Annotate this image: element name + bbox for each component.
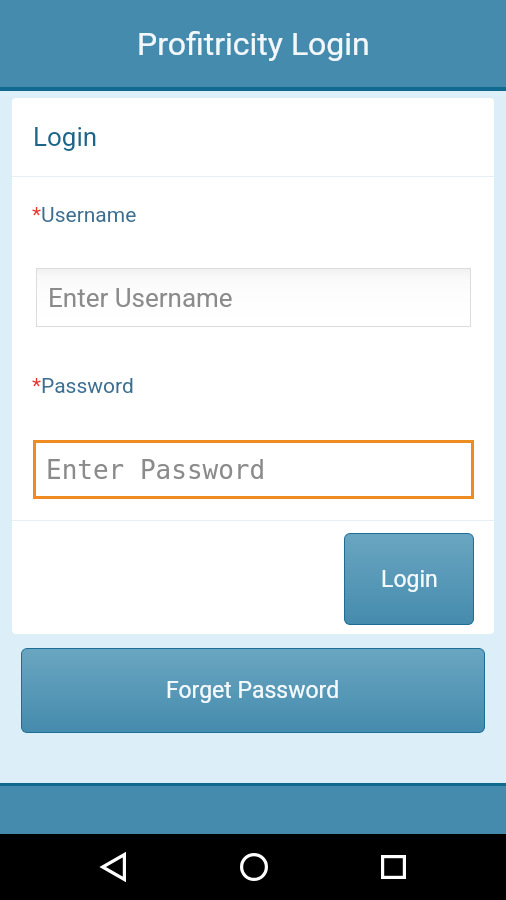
staticText: Enter Username <box>48 283 233 313</box>
button[interactable]: Login <box>344 533 474 625</box>
button[interactable]: Home <box>211 834 296 900</box>
staticText: Forget Password <box>166 677 340 704</box>
button[interactable]: Back <box>71 834 156 900</box>
staticText: Login <box>381 566 438 593</box>
staticText: *Password <box>32 374 134 399</box>
button[interactable]: Enter Password <box>33 440 474 499</box>
staticText: *Username <box>32 203 137 228</box>
staticText: Enter Password <box>46 455 266 485</box>
staticText: Profitricity Login <box>137 25 370 63</box>
button[interactable]: Enter Username <box>36 268 471 327</box>
staticText: Login <box>33 122 98 152</box>
button[interactable]: Forget Password <box>21 648 485 733</box>
button[interactable]: Recent apps <box>351 834 436 900</box>
